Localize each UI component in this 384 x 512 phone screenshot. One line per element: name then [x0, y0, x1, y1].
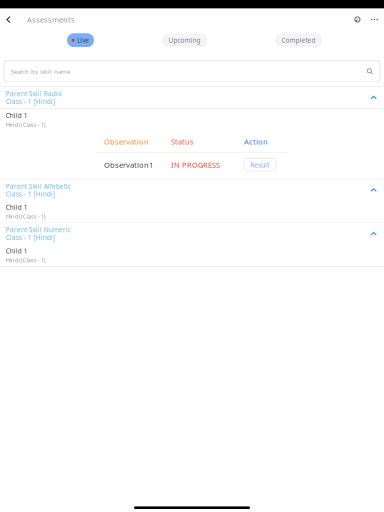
staticText: Class - 1 [Hindi] — [6, 233, 55, 242]
staticText: Observation — [104, 136, 149, 147]
button[interactable]: Result — [244, 158, 276, 171]
button[interactable]: Parent Skill Numeric — [0, 223, 384, 244]
button[interactable]: Completed — [275, 33, 322, 47]
staticText: Hindi|Class - 1) — [6, 212, 46, 220]
staticText: Search by skill name — [11, 67, 70, 76]
staticText: Child 1 — [6, 111, 28, 120]
button[interactable]: Parent Skill Alfabetic — [0, 180, 384, 201]
staticText: Class - 1 [Hindi] — [6, 97, 55, 106]
button[interactable]: Back — [0, 9, 17, 31]
staticText: Upcoming — [168, 36, 200, 45]
staticText: Action — [244, 136, 268, 147]
button[interactable]: Parent Skill Radio — [0, 87, 384, 108]
staticText: Child 1 — [6, 203, 28, 212]
staticText: Result — [250, 160, 270, 169]
staticText: Live — [77, 36, 89, 45]
button[interactable]: Upcoming — [161, 33, 207, 47]
button[interactable]: Live — [67, 33, 94, 47]
button[interactable]: More options — [366, 9, 383, 31]
staticText: Parent Skill Alfabetic — [6, 182, 71, 190]
button[interactable]: Refresh — [349, 9, 366, 31]
staticText: Status — [171, 136, 194, 147]
staticText: Class - 1 [Hindi] — [6, 190, 55, 198]
staticText: Assessments — [27, 14, 75, 25]
staticText: Parent Skill Numeric — [6, 225, 71, 234]
staticText: Completed — [281, 36, 315, 45]
staticText: Hindi|Class - 1) — [6, 120, 46, 128]
staticText: Observation1 — [104, 160, 153, 170]
staticText: Child 1 — [6, 247, 28, 255]
staticText: Hindi|Class - 1) — [6, 256, 46, 264]
staticText: Parent Skill Radio — [6, 89, 62, 98]
staticText: IN PROGRESS — [171, 160, 220, 170]
